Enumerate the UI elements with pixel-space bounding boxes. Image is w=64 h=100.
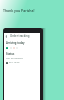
button[interactable]: Back <box>4 33 40 39</box>
other: Back <box>5 35 8 38</box>
staticText: Arriving today <box>6 41 25 45</box>
staticText: Thank you Parisha! <box>3 8 35 13</box>
staticText: Status <box>6 52 15 56</box>
staticText: Order tracking <box>10 34 30 38</box>
staticText: ETA 18:40 <box>9 61 20 64</box>
staticText: Out for delivery <box>6 57 23 60</box>
button[interactable]: Delivered <box>6 47 8 49</box>
